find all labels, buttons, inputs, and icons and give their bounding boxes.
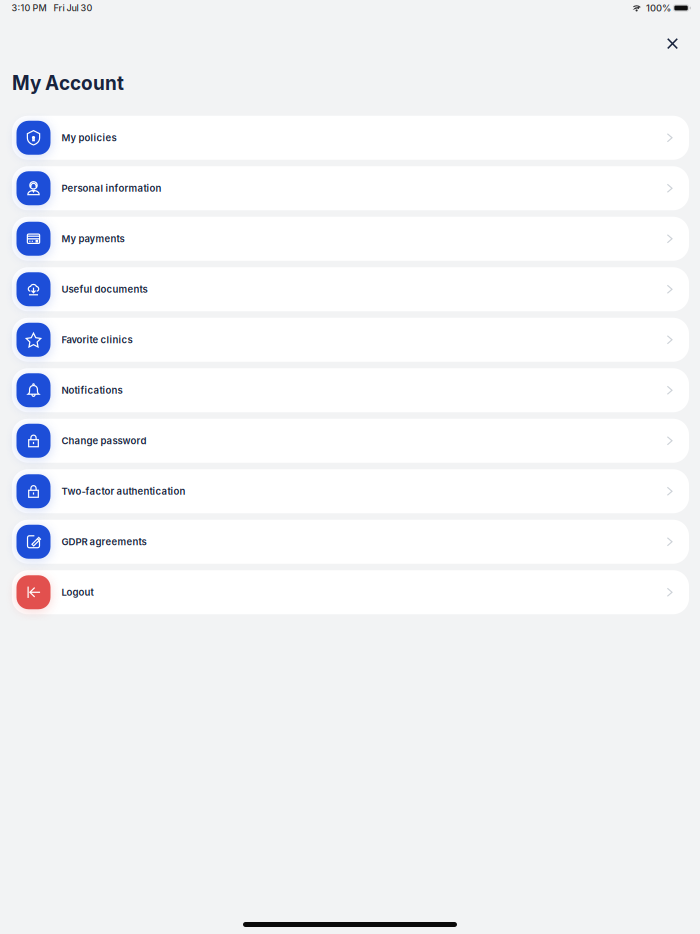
staticText: My payments [61, 233, 124, 245]
button[interactable]: Notifications [0, 365, 700, 415]
button[interactable]: Personal information [0, 163, 700, 213]
staticText: GDPR agreements [61, 536, 146, 548]
staticText: Useful documents [61, 283, 147, 295]
button[interactable]: Two-factor authentication [0, 466, 700, 516]
staticText: Fri Jul 30 [53, 2, 92, 13]
button[interactable]: My policies [0, 112, 700, 163]
staticText: Personal information [61, 182, 161, 194]
button[interactable]: My payments [0, 213, 700, 264]
staticText: 3:10 PM [11, 2, 46, 13]
button[interactable]: Logout [0, 567, 700, 617]
staticText: Two-factor authentication [61, 485, 185, 497]
button[interactable]: Close [655, 27, 689, 61]
staticText: Favorite clinics [61, 334, 132, 346]
staticText: Logout [61, 586, 93, 598]
button[interactable]: Useful documents [0, 264, 700, 314]
staticText: Notifications [61, 384, 122, 396]
staticText: Change password [61, 435, 146, 447]
button[interactable]: Favorite clinics [0, 314, 700, 365]
staticText: My Account [12, 72, 124, 94]
staticText: 100% [646, 2, 671, 14]
staticText: My policies [61, 132, 116, 144]
button[interactable]: Change password [0, 415, 700, 466]
button[interactable]: GDPR agreements [0, 516, 700, 567]
